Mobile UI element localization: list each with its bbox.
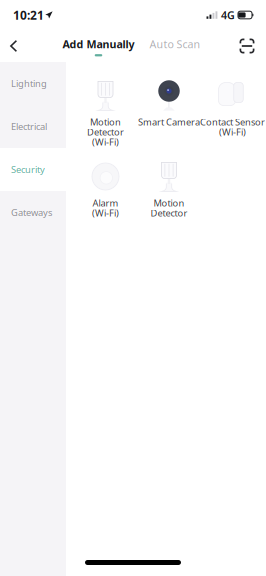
button[interactable]: Auto Scan <box>134 30 200 62</box>
staticText: Motion <box>90 116 121 128</box>
button[interactable]: Motion <box>137 161 201 242</box>
button[interactable]: Contact Sensor <box>201 80 264 161</box>
button[interactable]: Scan <box>233 30 261 62</box>
button[interactable]: Back <box>10 30 30 62</box>
staticText: Detector <box>150 207 187 219</box>
staticText: Security <box>11 163 45 176</box>
staticText: (Wi-Fi) <box>219 126 246 138</box>
staticText: Gateways <box>11 206 52 219</box>
button[interactable]: Motion <box>74 80 137 161</box>
button[interactable]: Add Manually <box>62 30 134 62</box>
staticText: Add Manually <box>62 37 134 51</box>
staticText: (Wi-Fi) <box>92 136 119 148</box>
button[interactable]: Electrical <box>0 105 66 148</box>
staticText: Smart Camera <box>138 116 200 128</box>
staticText: Lighting <box>11 77 47 90</box>
staticText: Electrical <box>11 120 47 133</box>
button[interactable]: Security <box>0 148 66 191</box>
staticText: Auto Scan <box>149 37 200 51</box>
button[interactable]: Lighting <box>0 62 66 105</box>
button[interactable]: Alarm <box>74 161 137 242</box>
button[interactable]: Gateways <box>0 191 66 234</box>
staticText: 10:21 <box>13 7 44 23</box>
staticText: (Wi-Fi) <box>92 207 119 219</box>
button[interactable]: Smart Camera <box>137 80 201 161</box>
staticText: Detector <box>87 126 124 138</box>
staticText: Contact Sensor <box>200 116 265 128</box>
staticText: 4G <box>221 8 235 22</box>
staticText: Alarm <box>92 197 118 209</box>
staticText: Motion <box>153 197 184 209</box>
